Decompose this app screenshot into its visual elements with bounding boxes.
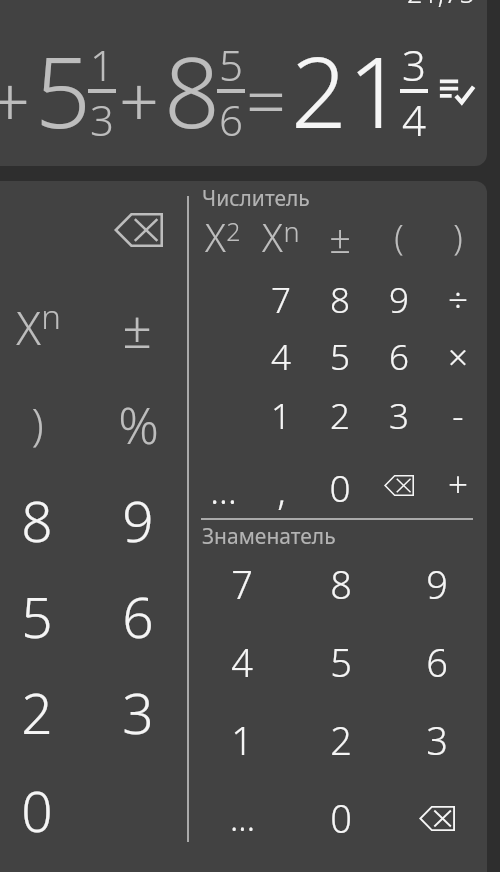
button[interactable]: ( [371, 209, 427, 265]
staticText: 1 [88, 36, 116, 93]
staticText: ... [210, 466, 237, 515]
staticText: = [246, 52, 282, 147]
staticText: 4 [231, 636, 253, 688]
staticText: ) [453, 214, 463, 260]
button[interactable]: 0 [312, 459, 368, 515]
staticText: 1 [231, 714, 253, 766]
staticText: 8 [164, 23, 208, 156]
staticText: + [0, 52, 26, 147]
button[interactable]: ) [430, 209, 486, 265]
staticText: ± [122, 292, 152, 363]
staticText: 8 [330, 276, 350, 324]
staticText: 21,75 [407, 0, 475, 11]
button[interactable]: + [430, 456, 486, 512]
button[interactable]: 8 [299, 547, 383, 621]
staticText: Знаменатель [202, 522, 336, 551]
button[interactable]: 6 [93, 576, 183, 656]
button[interactable]: ... [195, 462, 251, 518]
staticText: 1 [271, 392, 291, 440]
button[interactable]: ± [312, 210, 368, 266]
button[interactable]: 0 [0, 770, 82, 850]
button[interactable]: 2 [299, 703, 383, 777]
button[interactable]: History [438, 76, 474, 106]
button[interactable]: 8 [312, 272, 368, 328]
staticText: 8 [330, 558, 352, 610]
button[interactable]: 9 [371, 272, 427, 328]
staticText: ( [394, 214, 404, 260]
button[interactable]: 2 [312, 388, 368, 444]
button[interactable]: 3 [371, 388, 427, 444]
staticText: 6 [217, 91, 245, 148]
staticText: X [205, 211, 226, 263]
staticText: 5 [21, 579, 53, 654]
staticText: - [452, 392, 464, 440]
staticText: X [16, 297, 41, 358]
button[interactable]: 8 [0, 480, 82, 560]
button[interactable]: X [0, 287, 83, 367]
button[interactable]: - [430, 388, 486, 444]
button[interactable] [371, 457, 427, 513]
staticText: 2 [21, 675, 53, 750]
staticText: 3 [426, 714, 448, 766]
staticText: ÷ [448, 276, 468, 324]
button[interactable]: 7 [253, 272, 309, 328]
staticText: × [448, 333, 468, 381]
staticText: X [262, 211, 283, 263]
button[interactable]: 5 [312, 329, 368, 385]
staticText: 7 [271, 276, 291, 324]
button[interactable]: 9 [395, 547, 479, 621]
button[interactable]: , [253, 462, 309, 518]
staticText: 8 [21, 483, 53, 558]
staticText: 9 [122, 483, 154, 558]
button[interactable] [93, 190, 183, 270]
staticText: 3 [389, 392, 409, 440]
button[interactable]: 5 [0, 576, 82, 656]
staticText: % [118, 391, 159, 459]
staticText: 7 [231, 558, 253, 610]
staticText: 2 [330, 714, 352, 766]
staticText: 4 [271, 333, 291, 381]
staticText: 1 [348, 23, 392, 156]
staticText: 9 [389, 276, 409, 324]
staticText: 5 [330, 333, 350, 381]
button[interactable]: ... [200, 781, 284, 855]
button[interactable]: X [195, 209, 251, 265]
staticText: ... [230, 795, 255, 841]
staticText: + [448, 460, 468, 508]
button[interactable]: 6 [395, 625, 479, 699]
button[interactable]: 6 [371, 329, 427, 385]
staticText: Числитель [202, 184, 310, 213]
button[interactable]: 5 [299, 625, 383, 699]
staticText: , [277, 464, 286, 516]
button[interactable]: X [253, 209, 309, 265]
button[interactable]: ) [0, 384, 82, 464]
button[interactable]: × [430, 329, 486, 385]
staticText: 9 [426, 558, 448, 610]
button[interactable]: % [93, 385, 183, 465]
button[interactable]: 4 [200, 625, 284, 699]
staticText: 3 [122, 675, 154, 750]
staticText: ) [31, 394, 44, 454]
staticText: + [119, 52, 155, 147]
button[interactable]: 3 [93, 672, 183, 752]
button[interactable]: 1 [253, 388, 309, 444]
button[interactable]: 0 [299, 781, 383, 855]
staticText: ± [329, 212, 351, 264]
staticText: 5 [330, 636, 352, 688]
button[interactable] [395, 781, 479, 855]
staticText: 0 [21, 773, 53, 848]
staticText: 2 [226, 214, 241, 248]
staticText: 2 [330, 392, 350, 440]
staticText: n [41, 294, 61, 339]
button[interactable]: 4 [253, 329, 309, 385]
staticText: 6 [389, 333, 409, 381]
button[interactable]: 1 [200, 703, 284, 777]
button[interactable]: ÷ [430, 272, 486, 328]
button[interactable]: 3 [395, 703, 479, 777]
button[interactable]: ± [92, 287, 182, 367]
button[interactable]: 2 [0, 672, 82, 752]
button[interactable]: 7 [200, 547, 284, 621]
staticText: 4 [400, 91, 428, 148]
staticText: n [283, 213, 300, 250]
button[interactable]: 9 [93, 480, 183, 560]
